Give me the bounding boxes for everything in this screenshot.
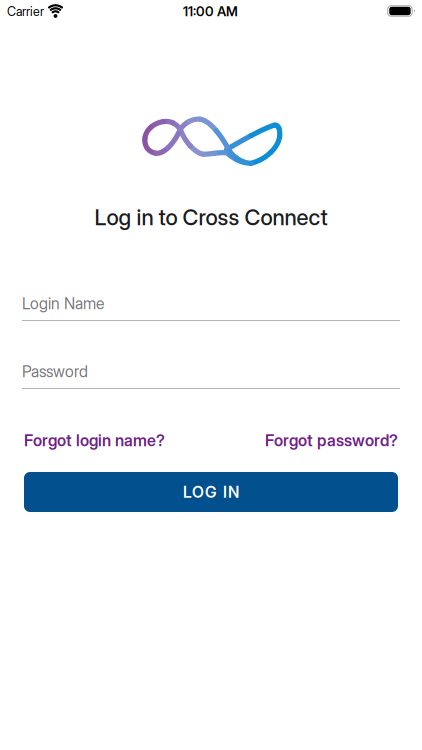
button[interactable]: Password xyxy=(22,362,400,389)
button[interactable]: LOG IN xyxy=(24,472,398,512)
staticText: Carrier xyxy=(7,4,44,19)
staticText: Login Name xyxy=(22,294,104,313)
button[interactable]: Forgot password? xyxy=(265,431,398,450)
staticText: Password xyxy=(22,362,88,381)
staticText: 11:00 AM xyxy=(183,3,238,19)
staticText: Log in to Cross Connect xyxy=(94,204,327,230)
staticText: Forgot login name? xyxy=(24,431,165,450)
button[interactable]: Forgot login name? xyxy=(24,431,165,450)
staticText: Forgot password? xyxy=(265,431,398,450)
staticText: LOG IN xyxy=(183,482,239,501)
button[interactable]: Login Name xyxy=(22,294,400,321)
